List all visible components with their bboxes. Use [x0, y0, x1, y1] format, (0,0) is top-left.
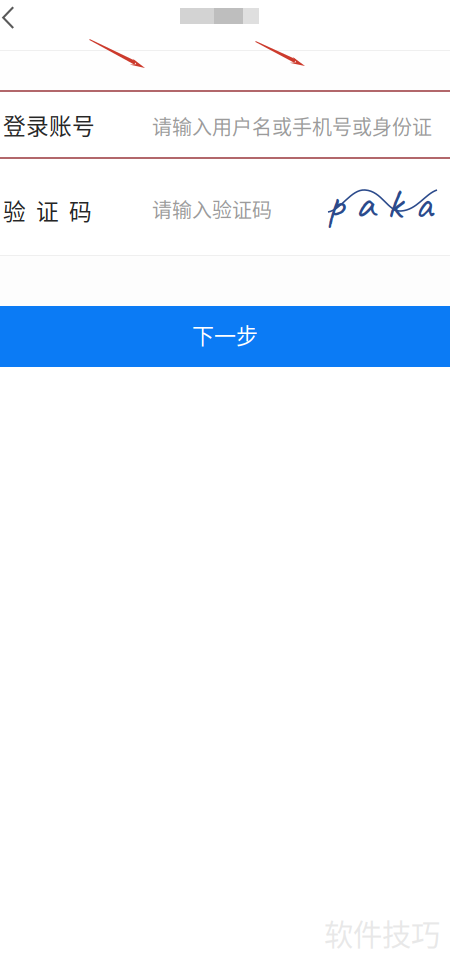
staticText: 验 证 码 [3, 194, 92, 226]
staticText: 登录账号 [3, 108, 95, 141]
staticText: 请输入用户名或手机号或身份证 [152, 111, 432, 140]
staticText: p a k a [327, 174, 432, 231]
button[interactable]: Refresh captcha [327, 184, 438, 230]
button[interactable]: 下一步 [0, 306, 450, 367]
button[interactable]: Back [0, 0, 29, 50]
staticText: 下一步 [192, 319, 258, 350]
staticText: 软件技巧 [324, 911, 440, 954]
staticText: 请输入验证码 [152, 194, 272, 223]
